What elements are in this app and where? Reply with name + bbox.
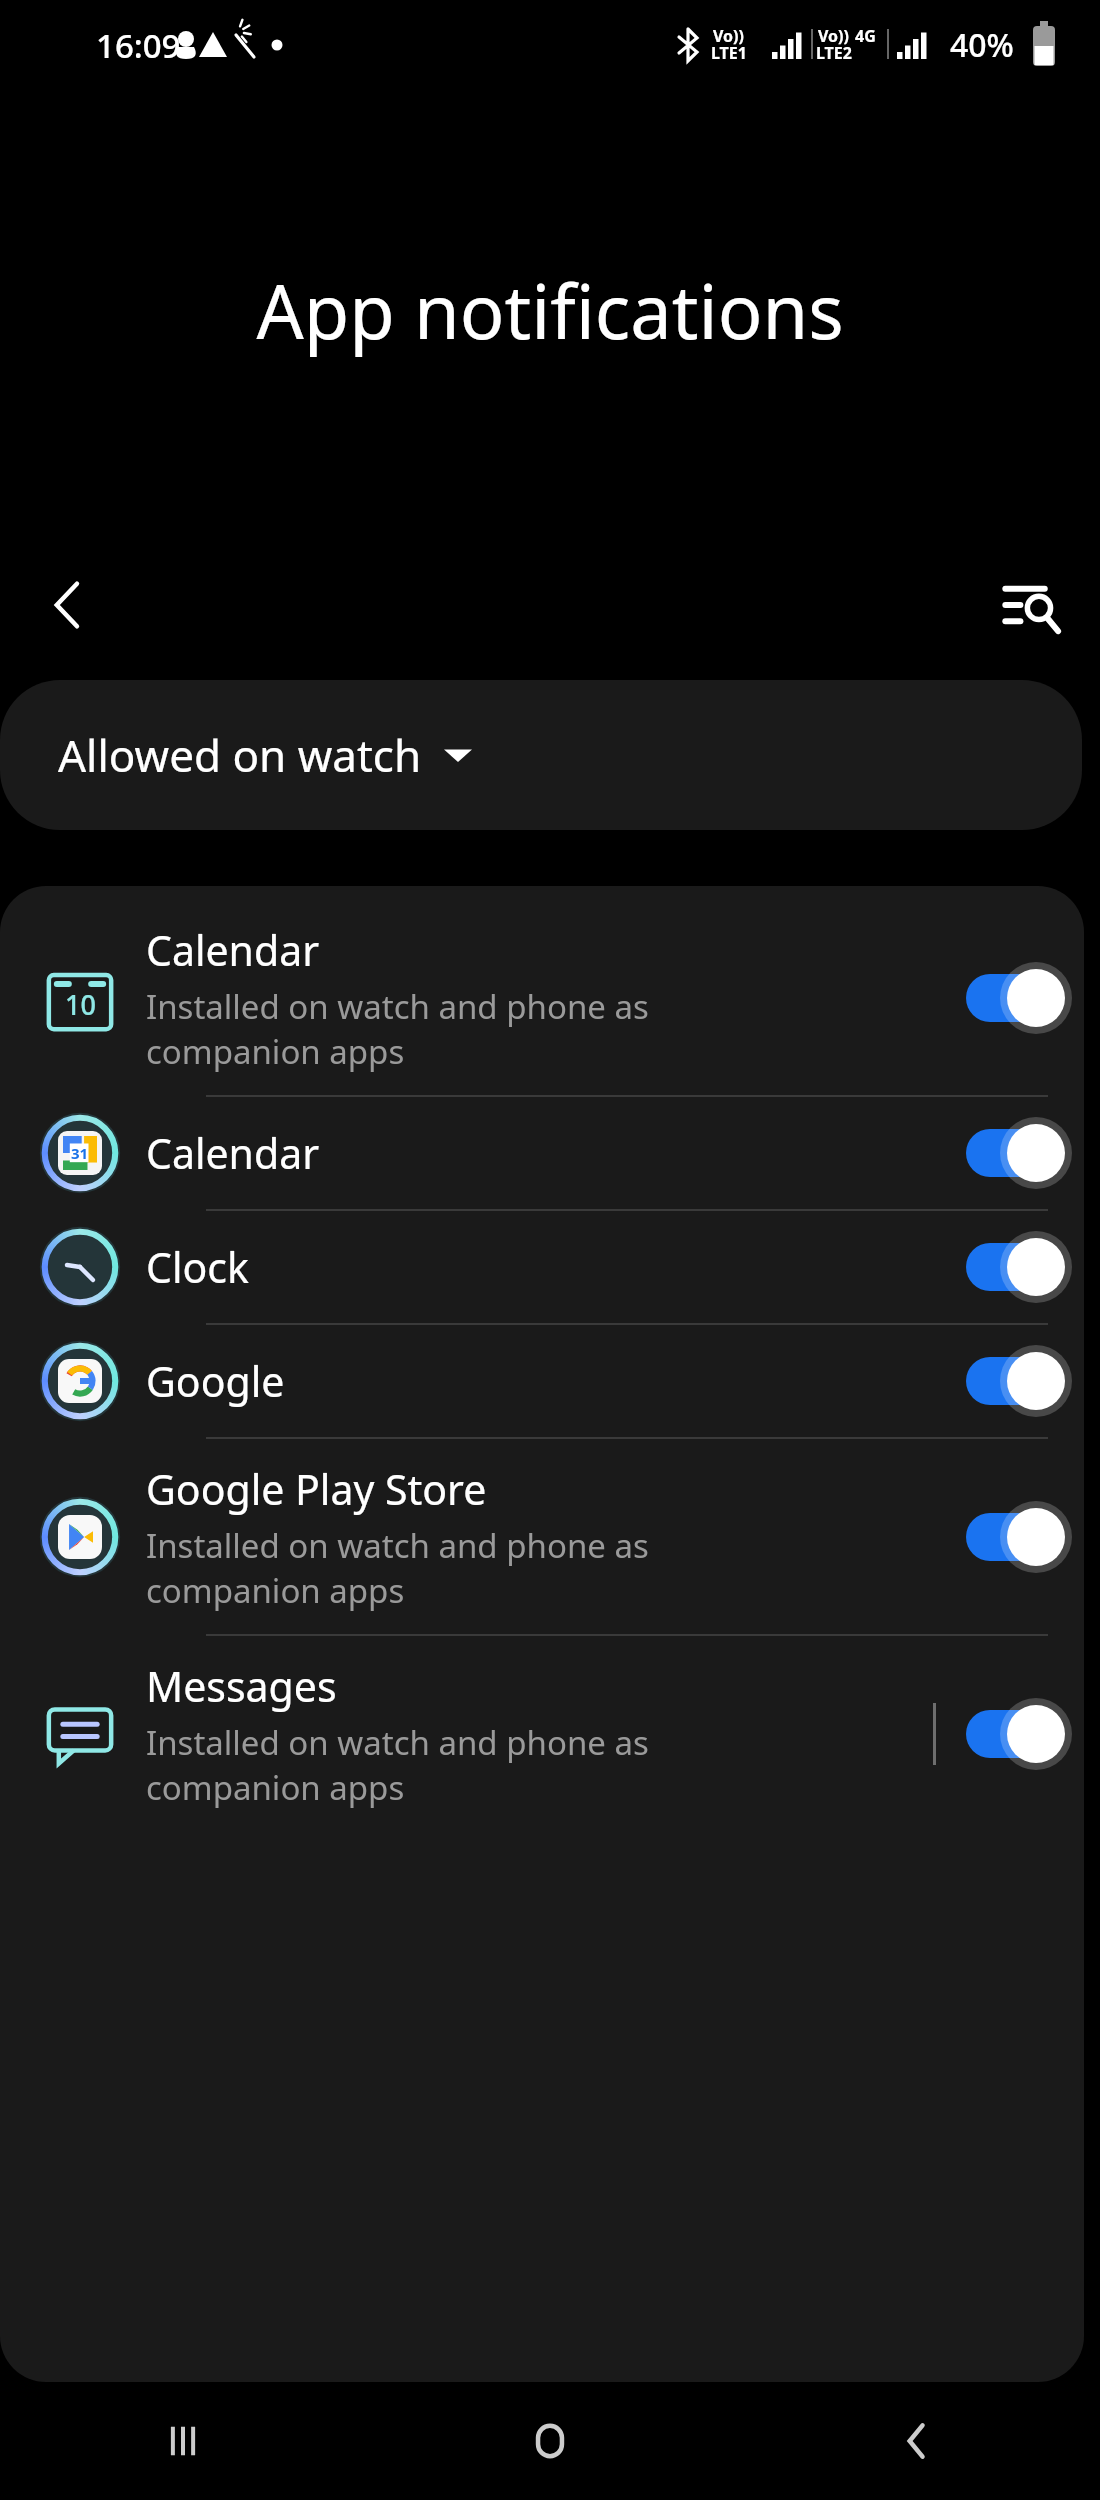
staticText: Calendar: [146, 1125, 320, 1181]
button[interactable]: Toggle notifications: [966, 1506, 1066, 1568]
button[interactable]: Home: [366, 2382, 733, 2500]
button[interactable]: Back: [20, 557, 116, 653]
button[interactable]: Back: [733, 2382, 1100, 2500]
button[interactable]: Clock: [0, 1211, 1084, 1323]
button[interactable]: Recent apps: [0, 2382, 366, 2500]
staticText: Calendar: [146, 922, 320, 978]
staticText: Installed on watch and phone as companio…: [146, 1523, 649, 1612]
staticText: 31: [71, 1143, 89, 1163]
staticText: Allowed on watch: [58, 725, 422, 785]
staticText: LTE2: [816, 42, 852, 64]
staticText: Vo)): [713, 25, 744, 47]
button[interactable]: Toggle notifications: [966, 1350, 1066, 1412]
staticText: Messages: [146, 1658, 337, 1714]
button[interactable]: 31: [0, 1097, 1084, 1209]
button[interactable]: Toggle notifications: [966, 1703, 1066, 1765]
staticText: 16:09: [96, 23, 181, 68]
button[interactable]: Google: [0, 1325, 1084, 1437]
button[interactable]: Toggle notifications: [966, 1122, 1066, 1184]
staticText: Google Play Store: [146, 1461, 487, 1517]
staticText: Google: [146, 1353, 285, 1409]
button[interactable]: Toggle notifications: [966, 967, 1066, 1029]
staticText: Installed on watch and phone as companio…: [146, 1720, 649, 1809]
button[interactable]: Messages: [0, 1636, 1084, 1831]
staticText: LTE1: [711, 42, 747, 64]
button[interactable]: 10: [0, 900, 1084, 1095]
button[interactable]: Allowed on watch: [0, 680, 1082, 830]
button[interactable]: Google Play Store: [0, 1439, 1084, 1634]
button[interactable]: Toggle notifications: [966, 1236, 1066, 1298]
staticText: 40%: [950, 23, 1014, 67]
staticText: 4G: [855, 25, 876, 47]
staticText: Clock: [146, 1239, 249, 1295]
staticText: Vo)): [818, 25, 849, 47]
staticText: Installed on watch and phone as companio…: [146, 984, 649, 1073]
button[interactable]: Search and filter: [984, 557, 1080, 653]
staticText: App notifications: [256, 260, 844, 361]
staticText: 10: [65, 986, 96, 1023]
